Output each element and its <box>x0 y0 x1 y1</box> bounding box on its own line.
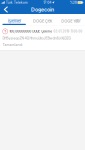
button[interactable]: DOGE Çek <box>28 14 57 25</box>
staticText: DH5yaieqoZN4QHnmuUtoJEBwdn8JrXjDZG <box>2 36 70 40</box>
staticText: Türk Telekom <box>6 0 28 4</box>
staticText: 03.01.2019 11:00:00 <box>54 30 83 33</box>
staticText: Dogecoin <box>31 6 54 13</box>
button[interactable]: Back <box>0 5 12 14</box>
staticText: 100,00000000 DOGE Çekme <box>9 29 52 33</box>
staticText: İşlemler <box>8 19 21 23</box>
staticText: Tamamlandı <box>2 43 22 47</box>
staticText: DOGE Yatır <box>61 19 80 23</box>
button[interactable]: 100,00000000 DOGE Çekme <box>0 25 85 50</box>
staticText: %28 <box>70 0 77 4</box>
button[interactable]: DOGE Yatır <box>57 14 85 25</box>
button[interactable]: İşlemler <box>0 14 28 25</box>
staticText: DOGE Çek <box>33 19 52 23</box>
staticText: 17:04 <box>43 0 51 4</box>
